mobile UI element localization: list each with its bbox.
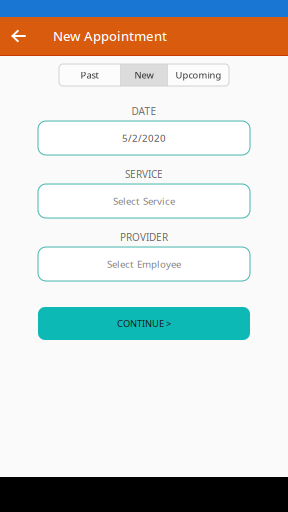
button[interactable]: CONTINUE >: [38, 307, 250, 340]
staticText: Select Employee: [107, 257, 181, 271]
staticText: 5/2/2020: [122, 131, 166, 145]
button[interactable]: Back: [0, 17, 37, 55]
staticText: Past: [80, 69, 98, 81]
button[interactable]: New: [121, 64, 167, 86]
staticText: PROVIDER: [120, 230, 168, 244]
button[interactable]: 5/2/2020: [38, 121, 250, 155]
button[interactable]: Select Service: [38, 184, 250, 218]
button[interactable]: Upcoming: [168, 64, 229, 86]
staticText: DATE: [131, 104, 156, 118]
button[interactable]: Past: [59, 64, 120, 86]
button[interactable]: Select Employee: [38, 247, 250, 281]
staticText: SERVICE: [125, 167, 163, 181]
staticText: New Appointment: [53, 27, 167, 45]
staticText: New: [134, 69, 153, 81]
staticText: Select Service: [113, 194, 175, 208]
staticText: CONTINUE >: [117, 317, 171, 330]
staticText: Upcoming: [175, 69, 221, 81]
